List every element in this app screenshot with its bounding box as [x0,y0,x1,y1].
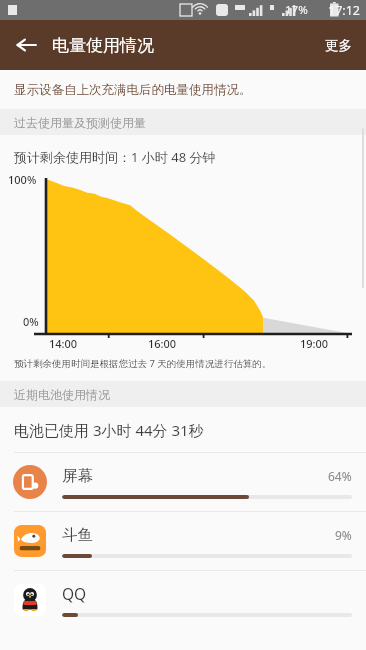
staticText: 电池已使用 3小时 44分 31秒 [14,420,204,440]
staticText: 斗鱼 [62,525,93,545]
staticText: 14:00 [49,336,78,351]
staticText: 预计剩余使用时间：1 小时 48 分钟 [14,148,216,166]
staticText: 16:00 [148,336,177,351]
button[interactable]: QQ [0,571,366,629]
button[interactable]: 斗鱼 [0,512,366,570]
button[interactable]: 返回 [6,25,46,65]
button[interactable]: 屏幕 [0,453,366,511]
staticText: 0% [23,314,39,329]
staticText: 9% [335,527,352,543]
staticText: 100% [8,172,37,187]
button[interactable]: 更多 [311,20,366,70]
staticText: 近期电池使用情况 [14,387,110,402]
staticText: 17% [285,2,308,18]
staticText: 64% [328,468,352,484]
staticText: 显示设备自上次充满电后的电量使用情况。 [14,82,252,98]
staticText: 17:12 [328,2,360,19]
staticText: QQ [62,583,87,604]
staticText: 屏幕 [62,466,93,486]
staticText: 电量使用情况 [52,35,154,56]
staticText: 过去使用量及预测使用量 [14,115,146,130]
staticText: 更多 [325,37,352,54]
staticText: 19:00 [300,336,329,351]
staticText: 预计剩余使用时间是根据您过去 7 天的使用情况进行估算的。 [14,357,272,370]
